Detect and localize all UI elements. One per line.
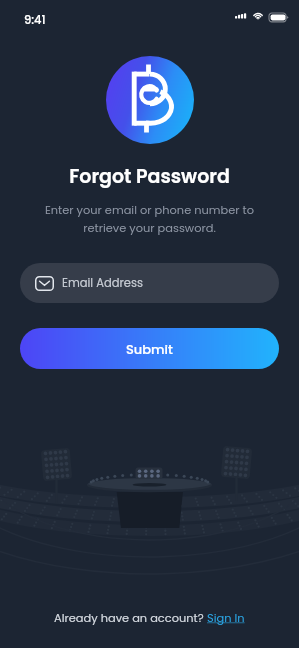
button[interactable]: Email xyxy=(20,263,279,303)
button[interactable]: Submit xyxy=(20,328,279,369)
staticText: Already have an account? xyxy=(54,610,207,626)
staticText: Enter your email or phone number to retr… xyxy=(0,202,299,236)
staticText: Submit xyxy=(126,340,173,358)
staticText: 9:41 xyxy=(24,12,46,28)
staticText: Email Address xyxy=(62,275,143,291)
other: Email xyxy=(35,276,54,291)
staticText: Forgot Password xyxy=(0,163,299,190)
button[interactable]: Sign In xyxy=(207,610,245,626)
